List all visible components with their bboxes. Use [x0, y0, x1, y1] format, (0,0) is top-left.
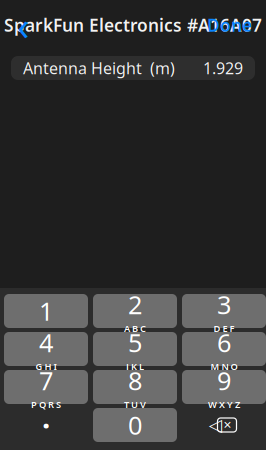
staticText: Antenna Height (m)	[23, 57, 175, 79]
button[interactable]: Back	[6, 8, 40, 42]
button[interactable]: 6	[182, 332, 266, 366]
button[interactable]: 9	[182, 370, 266, 404]
button[interactable]: 4	[4, 332, 88, 366]
staticText: 9	[217, 363, 231, 397]
staticText: 1	[39, 294, 53, 328]
staticText: 7	[39, 363, 53, 397]
staticText: ·	[42, 405, 50, 444]
staticText: M N O	[210, 360, 237, 372]
staticText: 6	[217, 325, 231, 359]
button[interactable]: Antenna Height (m)	[11, 56, 255, 80]
button[interactable]: 0	[93, 408, 177, 442]
staticText: SparkFun Electronics #A16A07	[4, 13, 262, 36]
staticText: ‹	[17, 0, 29, 51]
staticText: T U V	[124, 398, 146, 410]
staticText: 0	[128, 408, 142, 442]
staticText: Done	[207, 13, 252, 36]
button[interactable]: 7	[4, 370, 88, 404]
button[interactable]: Decimal point	[4, 408, 88, 442]
staticText: 8	[128, 363, 142, 397]
staticText: 3	[217, 287, 231, 321]
button[interactable]: 5	[93, 332, 177, 366]
staticText: 2	[128, 287, 142, 321]
staticText: P Q R S	[31, 398, 61, 410]
staticText: W X Y Z	[208, 398, 240, 410]
staticText: G H I	[35, 360, 56, 372]
staticText: 5	[128, 325, 142, 359]
button[interactable]: 2	[93, 294, 177, 328]
staticText: 1.929	[203, 57, 243, 79]
staticText: ◁	[209, 415, 222, 435]
button[interactable]: 8	[93, 370, 177, 404]
button[interactable]: Done	[199, 8, 260, 42]
staticText: J K L	[126, 360, 144, 372]
staticText: 4	[39, 325, 53, 359]
button[interactable]: Delete	[182, 408, 266, 442]
staticText: D E F	[213, 322, 234, 334]
button[interactable]: 1	[4, 294, 88, 328]
staticText: A B C	[124, 322, 146, 334]
button[interactable]: 3	[182, 294, 266, 328]
staticText: ✕	[223, 419, 232, 431]
